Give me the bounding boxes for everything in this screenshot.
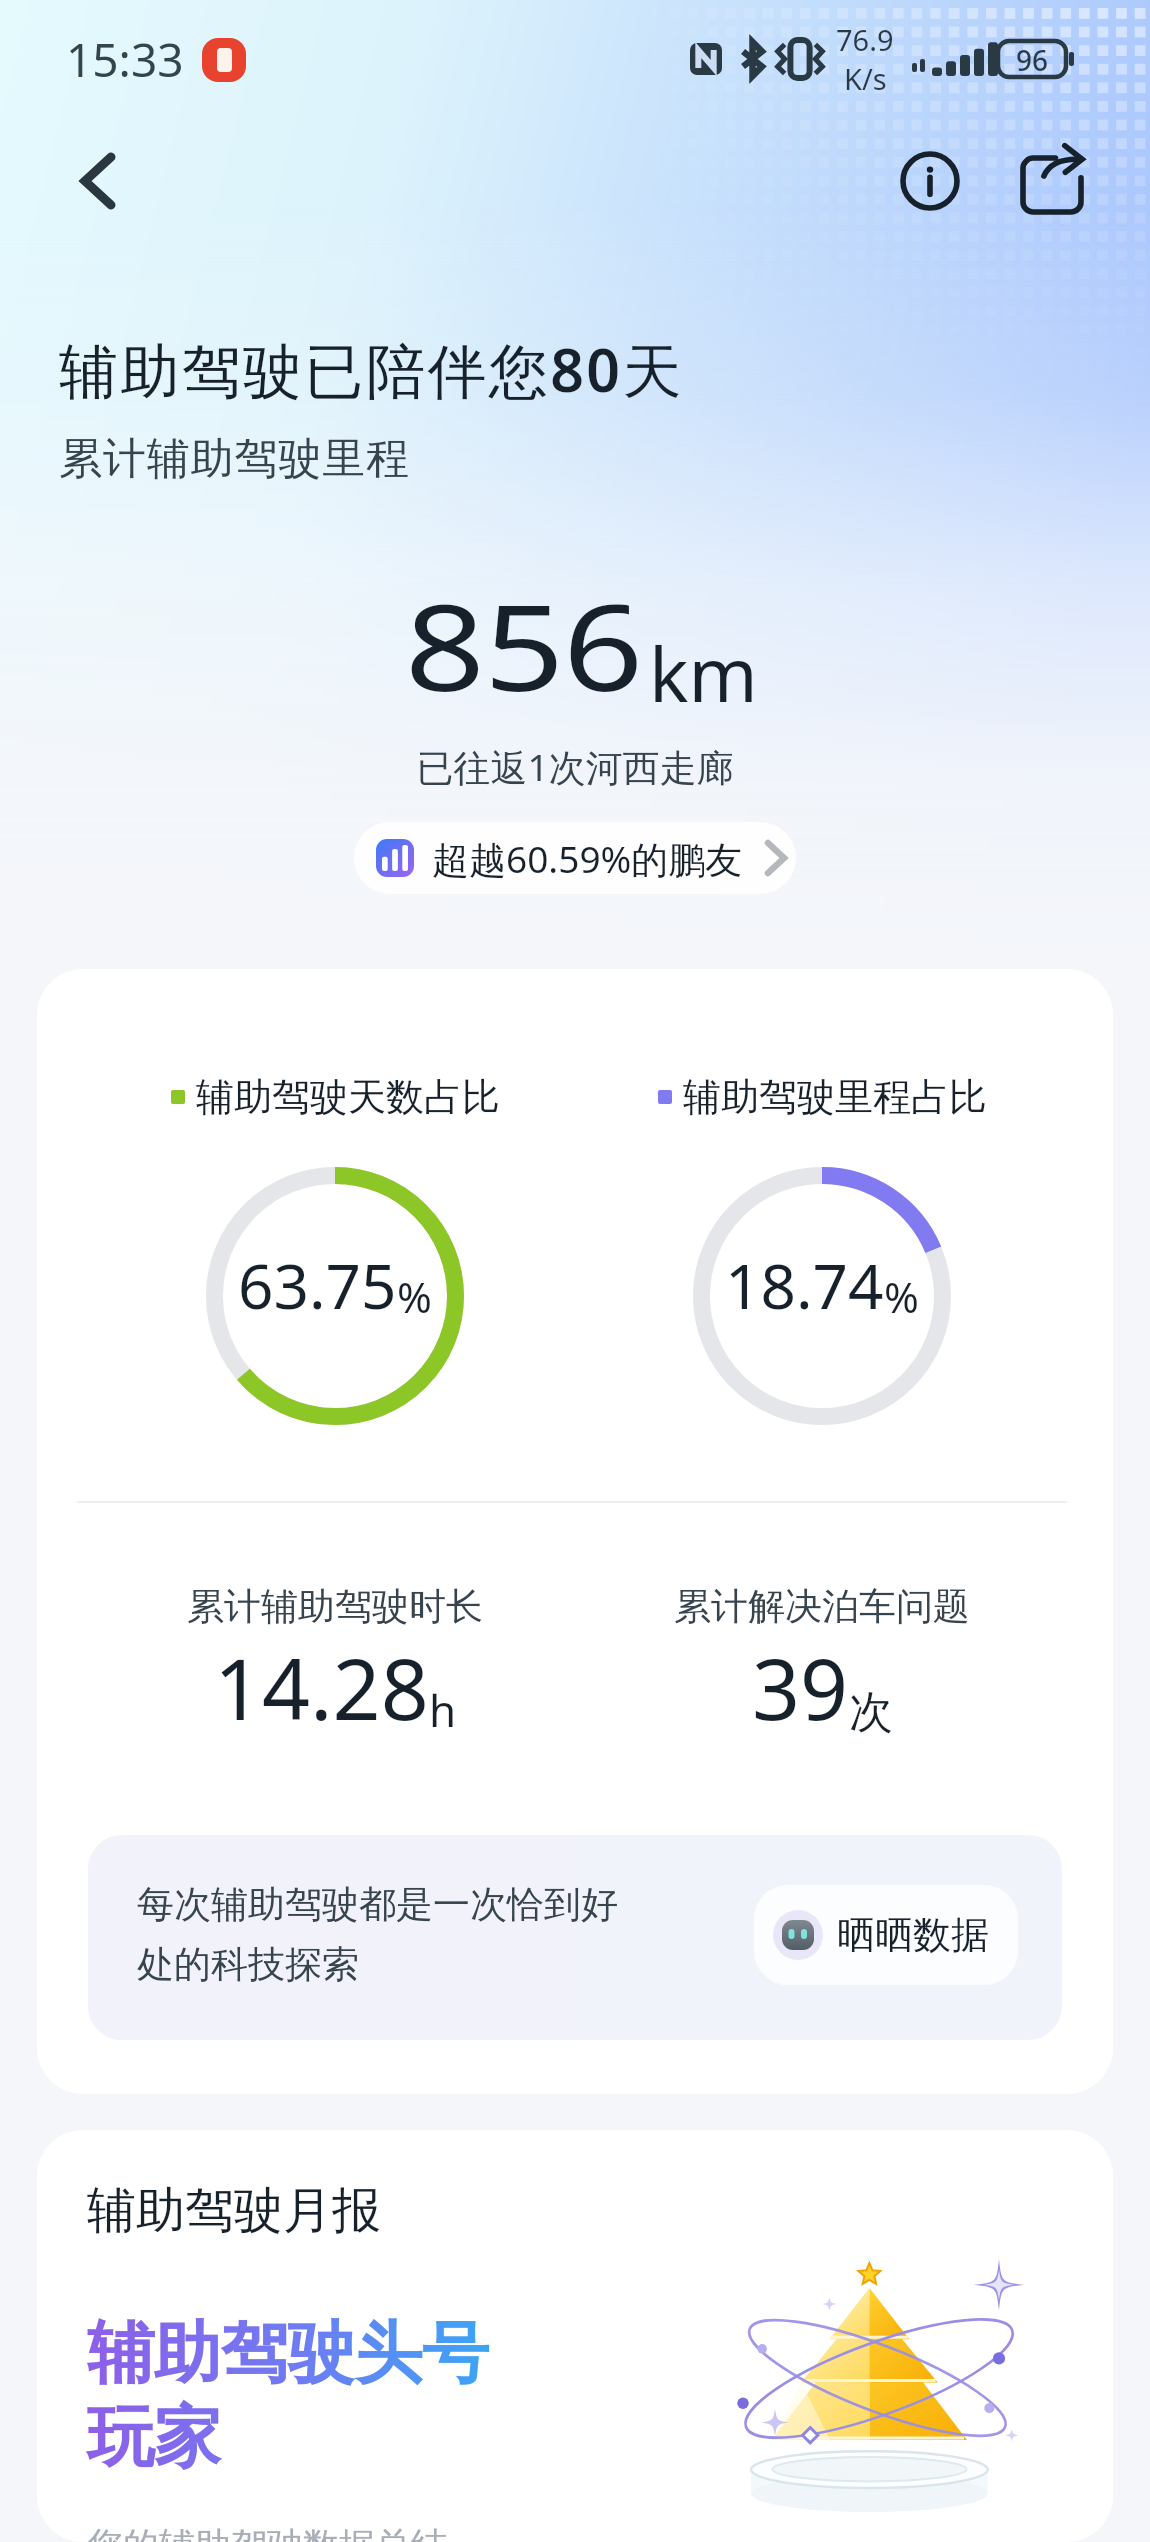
staticText: 次 [849,1685,893,1740]
staticText: 18.74 [725,1243,884,1327]
staticText: 累计解决泊车问题 [674,1583,970,1630]
staticText: % [884,1268,919,1325]
staticText: 96 [1016,41,1049,77]
staticText: h [429,1680,457,1740]
staticText: km [649,623,758,724]
staticText: 39 [752,1630,849,1744]
button[interactable]: 超越60.59%的鹏友 [354,822,796,894]
button[interactable]: 辅助驾驶月报 [37,2130,1113,2542]
staticText: 累计辅助驾驶时长 [187,1583,483,1630]
staticText: 您的辅助驾驶数据总结 [87,2523,447,2542]
button[interactable]: Info [884,135,976,227]
button[interactable]: Share [1006,135,1098,227]
staticText: 辅助驾驶头号 玩家 [87,2311,489,2480]
staticText: 超越60.59%的鹏友 [432,833,743,884]
staticText: 76.9 [836,20,894,59]
staticText: 辅助驾驶月报 [87,2180,381,2242]
staticText: 已往返1次河西走廊 [0,741,1150,792]
staticText: 15:33 [66,28,184,91]
staticText: 晒晒数据 [837,1911,989,1959]
staticText: 14.28 [214,1630,429,1744]
staticText: % [397,1268,432,1325]
staticText: 辅助驾驶里程占比 [683,1073,987,1121]
button[interactable]: Back [50,133,146,229]
button[interactable]: 晒晒数据 [754,1885,1018,1985]
staticText: 辅助驾驶已陪伴您80天 [59,329,684,410]
staticText: 每次辅助驾驶都是一次恰到好 处的科技探索 [137,1881,618,1988]
staticText: 63.75 [238,1243,397,1327]
staticText: 856 [405,564,643,726]
staticText: 辅助驾驶天数占比 [196,1073,500,1121]
staticText: K/s [844,59,887,98]
staticText: 累计辅助驾驶里程 [59,432,411,486]
